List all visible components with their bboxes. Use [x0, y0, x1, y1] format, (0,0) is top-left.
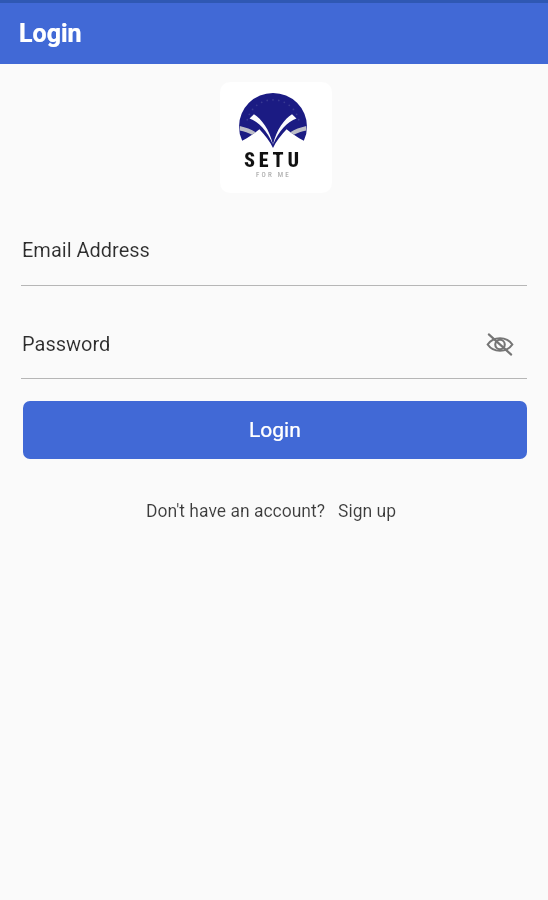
button[interactable]: Email Address [21, 232, 527, 286]
button[interactable]: Show password [485, 330, 514, 358]
staticText: FOR ME [256, 171, 291, 179]
staticText: Login [249, 418, 301, 443]
staticText: Don't have an account? [146, 501, 326, 522]
button[interactable]: Sign up [338, 501, 396, 522]
button[interactable]: Login [23, 401, 527, 459]
staticText: Email Address [22, 238, 150, 261]
staticText: Sign up [338, 501, 396, 522]
button[interactable]: Password [21, 326, 527, 379]
staticText: Password [22, 332, 111, 355]
staticText: SETU [244, 148, 303, 171]
staticText: Login [19, 19, 82, 48]
